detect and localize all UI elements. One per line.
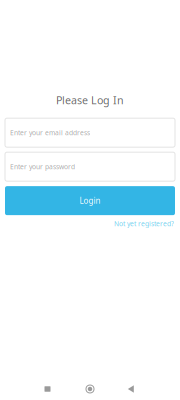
button[interactable]: Email address <box>5 118 175 147</box>
button[interactable]: Login <box>5 186 175 215</box>
button[interactable]: Password <box>5 152 175 181</box>
staticText: Not yet registered? <box>114 219 174 228</box>
staticText: Login <box>79 195 100 206</box>
button[interactable]: Home <box>70 376 110 400</box>
button[interactable]: Recent apps <box>25 376 70 400</box>
staticText: Enter your email address <box>10 128 90 137</box>
button[interactable]: Back <box>110 376 155 400</box>
staticText: Please Log In <box>56 93 124 107</box>
staticText: Enter your password <box>10 162 75 171</box>
button[interactable]: Not yet registered? <box>114 219 175 228</box>
